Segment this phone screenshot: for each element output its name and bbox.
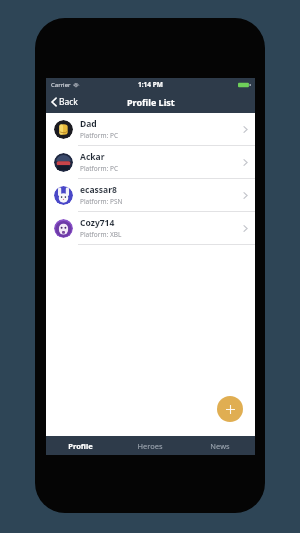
button[interactable]: Back bbox=[49, 93, 80, 111]
staticText: Carrier bbox=[51, 81, 71, 89]
staticText: Heroes bbox=[137, 441, 163, 451]
button[interactable]: Profile bbox=[46, 436, 115, 455]
staticText: Profile List bbox=[127, 96, 175, 108]
staticText: Platform: PSN bbox=[80, 197, 123, 206]
staticText: ecassar8 bbox=[80, 184, 117, 196]
staticText: Back bbox=[59, 96, 78, 108]
staticText: News bbox=[210, 441, 230, 451]
button[interactable]: Ackar bbox=[46, 146, 255, 178]
staticText: Ackar bbox=[80, 151, 105, 163]
button[interactable]: News bbox=[185, 436, 255, 455]
staticText: Profile bbox=[68, 441, 93, 451]
staticText: 1:14 PM bbox=[138, 80, 163, 89]
button[interactable]: Add profile bbox=[217, 396, 243, 422]
staticText: Platform: XBL bbox=[80, 230, 122, 239]
button[interactable]: ecassar8 bbox=[46, 179, 255, 211]
button[interactable]: Dad bbox=[46, 113, 255, 145]
button[interactable]: Heroes bbox=[115, 436, 185, 455]
staticText: Platform: PC bbox=[80, 131, 119, 140]
staticText: Platform: PC bbox=[80, 164, 119, 173]
button[interactable]: Cozy714 bbox=[46, 212, 255, 244]
staticText: Cozy714 bbox=[80, 217, 115, 229]
staticText: Dad bbox=[80, 118, 97, 130]
